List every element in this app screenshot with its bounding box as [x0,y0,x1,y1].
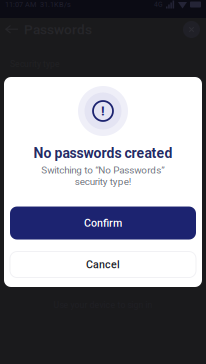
staticText: Passwords [24,21,92,37]
staticText: 11:07 AM 31.1KB/s [5,0,71,9]
button[interactable]: Cancel [10,251,196,277]
button[interactable]: Clear [183,21,200,38]
staticText: Cancel [86,258,120,271]
staticText: 4G [154,1,163,8]
staticText: ! [101,103,105,119]
staticText: No passwords created [33,145,172,161]
button[interactable]: Back [3,23,20,36]
staticText: Confirm [84,217,122,229]
button[interactable]: Confirm [10,206,196,239]
staticText: Switching to “No Passwords” security typ… [41,164,165,187]
